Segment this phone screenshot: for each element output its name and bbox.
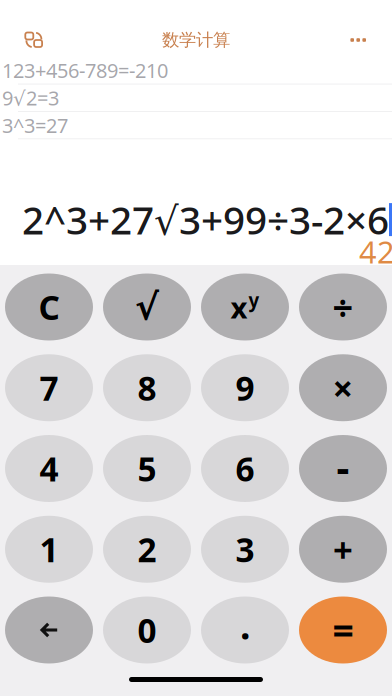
button[interactable]: 8 xyxy=(103,354,191,421)
staticText: 123+456-789=-210 xyxy=(2,57,168,84)
button[interactable]: 9 xyxy=(201,354,289,421)
staticText: C xyxy=(38,285,59,329)
staticText: 0 xyxy=(137,608,156,652)
button[interactable]: 5 xyxy=(103,435,191,502)
button[interactable]: . xyxy=(201,596,289,663)
button[interactable]: 0 xyxy=(103,596,191,663)
button[interactable]: √ xyxy=(103,273,191,340)
staticText: 3 xyxy=(235,527,254,571)
staticText: y xyxy=(248,287,259,312)
staticText: x xyxy=(230,287,247,326)
staticText: 8 xyxy=(137,366,156,410)
button[interactable] xyxy=(350,38,366,42)
button[interactable]: C xyxy=(5,273,93,340)
staticText: 数学计算 xyxy=(162,29,230,51)
button[interactable]: ÷ xyxy=(299,273,387,340)
staticText: 4 xyxy=(39,446,58,491)
staticText: 42 xyxy=(359,231,392,272)
staticText: √ xyxy=(135,287,159,327)
button[interactable]: 123+456-789=-210 xyxy=(0,57,392,84)
staticText: . xyxy=(240,600,250,650)
staticText: = xyxy=(332,605,353,655)
staticText: 7 xyxy=(39,366,58,410)
button[interactable]: 9√2=3 xyxy=(0,84,392,112)
staticText: 6 xyxy=(235,446,254,491)
button[interactable]: x xyxy=(201,273,289,340)
button[interactable] xyxy=(25,32,43,48)
staticText: + xyxy=(333,526,353,572)
staticText: 5 xyxy=(137,446,156,491)
button[interactable]: 4 xyxy=(5,435,93,502)
staticText: 1 xyxy=(39,527,58,571)
staticText: 3^3=27 xyxy=(2,112,68,138)
staticText: - xyxy=(336,440,349,493)
button[interactable]: 2 xyxy=(103,516,191,583)
staticText: 9 xyxy=(235,366,254,410)
button[interactable]: 6 xyxy=(201,435,289,502)
staticText: × xyxy=(332,364,353,412)
staticText: 2 xyxy=(137,527,156,571)
button[interactable] xyxy=(5,596,93,663)
button[interactable]: = xyxy=(299,596,387,663)
button[interactable]: 3^3=27 xyxy=(0,112,392,139)
button[interactable]: × xyxy=(299,354,387,421)
button[interactable]: - xyxy=(299,435,387,502)
button[interactable]: 3 xyxy=(201,516,289,583)
staticText: ÷ xyxy=(332,283,353,331)
button[interactable]: + xyxy=(299,516,387,583)
staticText: 2^3+27√3+99÷3-2×6 xyxy=(22,194,389,245)
button[interactable]: 1 xyxy=(5,516,93,583)
button[interactable]: 7 xyxy=(5,354,93,421)
staticText: 9√2=3 xyxy=(2,84,59,111)
